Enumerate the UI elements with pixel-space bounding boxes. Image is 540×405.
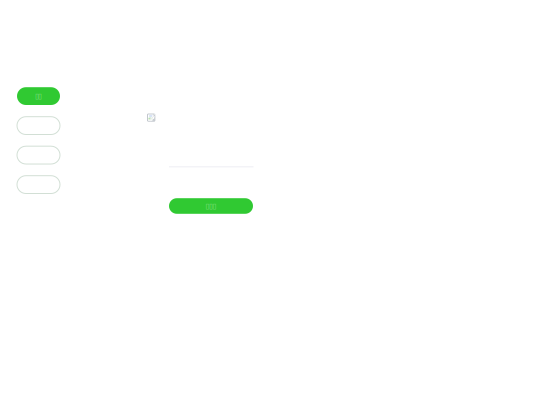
button[interactable]: Option 1 xyxy=(17,117,60,134)
staticText: ▯▯ xyxy=(35,92,42,100)
button[interactable]: Submit xyxy=(169,198,253,214)
button[interactable]: Primary action xyxy=(17,87,60,105)
button[interactable]: Option 3 xyxy=(17,176,60,193)
button[interactable]: Option 2 xyxy=(17,146,60,164)
staticText: ▯▯▯ xyxy=(206,202,216,210)
